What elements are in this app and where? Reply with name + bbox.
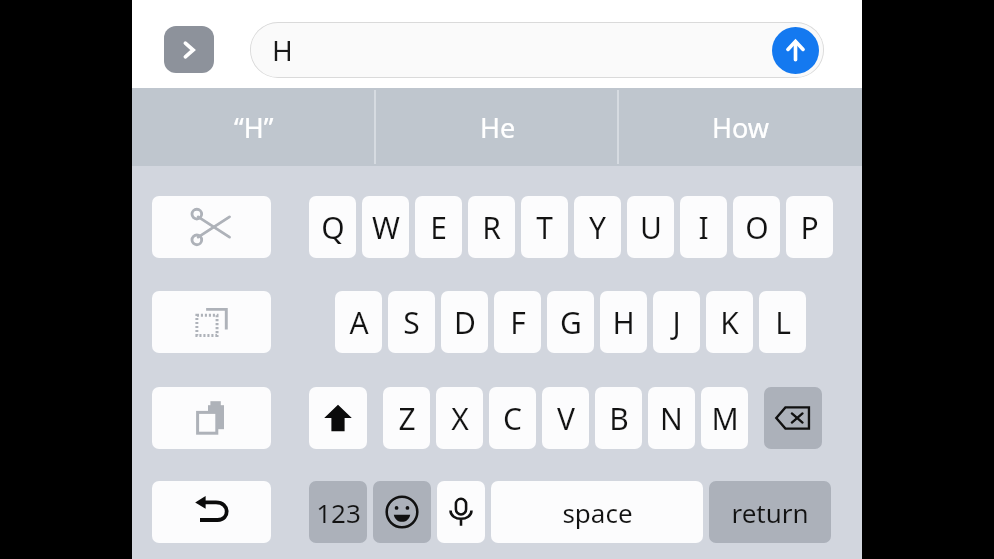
button[interactable]: V (542, 387, 589, 449)
staticText: He (480, 109, 516, 146)
staticText: P (800, 207, 819, 248)
button[interactable]: space (491, 481, 703, 543)
staticText: D (454, 302, 476, 343)
staticText: C (503, 398, 522, 439)
staticText: E (430, 207, 447, 248)
button[interactable]: W (362, 196, 409, 258)
button[interactable]: J (653, 291, 700, 353)
button[interactable]: C (489, 387, 536, 449)
button[interactable]: Send (772, 27, 819, 74)
button[interactable]: F (494, 291, 541, 353)
staticText: return (731, 495, 809, 530)
staticText: S (403, 302, 420, 343)
button[interactable]: Paste (152, 387, 271, 449)
button[interactable]: “H” (132, 88, 376, 166)
button[interactable]: Y (574, 196, 621, 258)
button[interactable]: H (250, 22, 824, 78)
button[interactable]: return (709, 481, 831, 543)
button[interactable]: A (335, 291, 382, 353)
button[interactable]: P (786, 196, 833, 258)
button[interactable]: He (376, 88, 619, 166)
button[interactable]: Shift (309, 387, 367, 449)
button[interactable]: U (627, 196, 674, 258)
staticText: K (720, 302, 739, 343)
button[interactable]: E (415, 196, 462, 258)
button[interactable]: R (468, 196, 515, 258)
button[interactable]: I (680, 196, 727, 258)
button[interactable]: X (436, 387, 483, 449)
staticText: W (372, 207, 400, 248)
button[interactable]: N (648, 387, 695, 449)
button[interactable]: S (388, 291, 435, 353)
staticText: L (775, 302, 791, 343)
staticText: B (609, 398, 629, 439)
staticText: How (712, 109, 770, 146)
button[interactable]: Undo (152, 481, 271, 543)
staticText: Y (589, 207, 606, 248)
staticText: I (698, 207, 709, 248)
staticText: H (272, 31, 293, 69)
staticText: H (612, 302, 635, 343)
button[interactable]: G (547, 291, 594, 353)
button[interactable]: O (733, 196, 780, 258)
button[interactable]: How (619, 88, 862, 166)
staticText: G (560, 302, 582, 343)
staticText: N (660, 398, 683, 439)
button[interactable]: Z (383, 387, 430, 449)
staticText: X (451, 398, 469, 439)
staticText: 123 (316, 495, 361, 530)
staticText: space (562, 495, 633, 530)
staticText: J (672, 302, 681, 343)
staticText: O (745, 207, 769, 248)
button[interactable]: B (595, 387, 642, 449)
button[interactable]: Backspace (764, 387, 822, 449)
button[interactable]: D (441, 291, 488, 353)
staticText: Z (398, 398, 416, 439)
staticText: “H” (234, 109, 274, 146)
staticText: Q (321, 207, 345, 248)
staticText: M (711, 398, 739, 439)
button[interactable]: Q (309, 196, 356, 258)
button[interactable]: Copy (152, 291, 271, 353)
button[interactable]: Emoji (373, 481, 431, 543)
button[interactable]: L (759, 291, 806, 353)
staticText: U (640, 207, 662, 248)
button[interactable]: 123 (309, 481, 367, 543)
staticText: F (510, 302, 526, 343)
button[interactable]: M (701, 387, 748, 449)
button[interactable]: H (600, 291, 647, 353)
staticText: T (536, 207, 553, 248)
button[interactable]: Expand toolbar (164, 26, 214, 73)
button[interactable]: K (706, 291, 753, 353)
staticText: R (482, 207, 501, 248)
button[interactable]: Cut (152, 196, 271, 258)
staticText: A (349, 302, 369, 343)
staticText: V (557, 398, 575, 439)
button[interactable]: T (521, 196, 568, 258)
button[interactable]: Dictate (437, 481, 485, 543)
